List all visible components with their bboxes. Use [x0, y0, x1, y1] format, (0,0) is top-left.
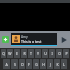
staticText: L — [63, 62, 65, 67]
button[interactable]: H — [40, 59, 46, 69]
button[interactable]: Y — [35, 49, 41, 58]
button[interactable]: A — [3, 59, 10, 69]
button[interactable]: K — [54, 59, 60, 69]
button[interactable]: Q — [1, 49, 6, 58]
staticText: S — [14, 62, 16, 67]
button[interactable]: E — [14, 49, 20, 58]
button[interactable]: L — [61, 59, 67, 69]
button[interactable]: U — [42, 49, 48, 58]
staticText: R — [23, 51, 26, 56]
staticText: W — [8, 51, 12, 56]
button[interactable]: T — [28, 49, 34, 58]
staticText: Y — [37, 51, 39, 56]
staticText: Q — [2, 51, 5, 56]
button[interactable]: S — [11, 59, 18, 69]
button[interactable]: P — [63, 49, 69, 58]
staticText: Amy — [21, 35, 28, 39]
staticText: P — [65, 51, 68, 56]
staticText: I — [51, 51, 53, 56]
button[interactable]: D — [19, 59, 25, 69]
staticText: This is a test message! — [21, 39, 56, 44]
button[interactable]: Amy — [11, 33, 57, 46]
button[interactable]: G — [33, 59, 39, 69]
staticText: J — [50, 62, 51, 67]
staticText: E — [16, 51, 18, 56]
button[interactable]: J — [47, 59, 53, 69]
staticText: D — [21, 62, 24, 67]
staticText: A — [5, 62, 8, 67]
staticText: O — [58, 51, 61, 56]
button[interactable]: Add attachment — [1, 35, 10, 44]
staticText: T — [30, 51, 32, 56]
staticText: H — [42, 62, 45, 67]
staticText: K — [56, 62, 59, 67]
button[interactable]: W — [7, 49, 13, 58]
button[interactable]: Send — [58, 34, 69, 45]
staticText: F — [28, 62, 30, 67]
staticText: U — [44, 51, 47, 56]
button[interactable]: F — [26, 59, 32, 69]
button[interactable]: O — [56, 49, 62, 58]
button[interactable]: R — [21, 49, 27, 58]
staticText: G — [35, 62, 38, 67]
button[interactable]: I — [49, 49, 55, 58]
